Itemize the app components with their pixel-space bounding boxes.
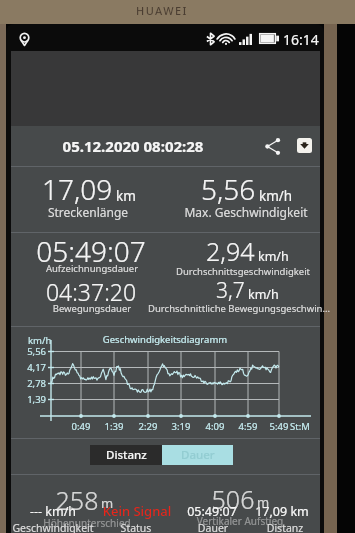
staticText: 4:09 [190,420,240,433]
staticText: 04:37:20 [0,276,201,307]
staticText: 506 [173,482,293,516]
staticText: 258 [17,483,137,517]
staticText: km/h [28,334,52,347]
staticText: Status [81,521,191,533]
staticText: 3,7 [216,276,245,305]
staticText: 2:29 [123,420,173,433]
staticText: HUAWEI [136,3,188,18]
staticText: 5,56 [201,170,256,208]
staticText: 05:49:07 [0,232,201,270]
staticText: St:M [275,420,325,433]
staticText: Dauer [181,447,215,463]
staticText: 4,17 [6,361,46,374]
staticText: 16:14 [283,30,319,49]
staticText: Aufzeichnungsdauer [0,262,202,275]
button[interactable]: Dauer [162,445,233,465]
staticText: 17,09 km [227,503,337,520]
staticText: m [257,493,270,511]
staticText: 2,78 [6,377,46,390]
staticText: Höhenunterschied [7,516,167,530]
button[interactable]: Exportieren [290,131,318,159]
staticText: Distanz [230,521,340,533]
staticText: km/h [248,286,279,303]
staticText: Vertikaler Aufstieg [160,514,320,528]
staticText: Geschwindigkeit [0,521,108,533]
staticText: 1:39 [89,420,139,433]
staticText: Streckenlänge [0,204,198,220]
staticText: km [116,187,136,205]
staticText: 5,56 [6,345,46,358]
staticText: --- km/h [0,503,108,520]
staticText: 2,94 [206,234,255,268]
staticText: 0:49 [56,420,106,433]
staticText: km/h [258,248,289,265]
staticText: 5:49 [254,420,304,433]
staticText: 05:49:07 [157,503,267,520]
staticText: Dauer [158,521,268,533]
staticText: Max. Geschwindigkeit [136,204,355,220]
staticText: 3:19 [156,420,206,433]
staticText: Kein Signal [82,502,192,520]
staticText: Durchschnittliche Bewegungsgeschwin… [144,302,334,315]
staticText: km/h [259,187,293,205]
staticText: 4:59 [223,420,273,433]
staticText: Durchschnittsgeschwindigkeit [133,265,353,278]
staticText: Distanz [106,447,147,463]
staticText: 17,09 [42,170,113,208]
button[interactable]: Teilen [259,132,287,160]
staticText: 1,39 [6,393,46,406]
button[interactable]: Distanz [90,445,162,465]
staticText: m [101,494,114,512]
staticText: Bewegungsdauer [0,302,202,315]
staticText: 05.12.2020 08:02:28 [23,136,243,156]
staticText: Geschwindigkeitsdiagramm [65,333,265,346]
